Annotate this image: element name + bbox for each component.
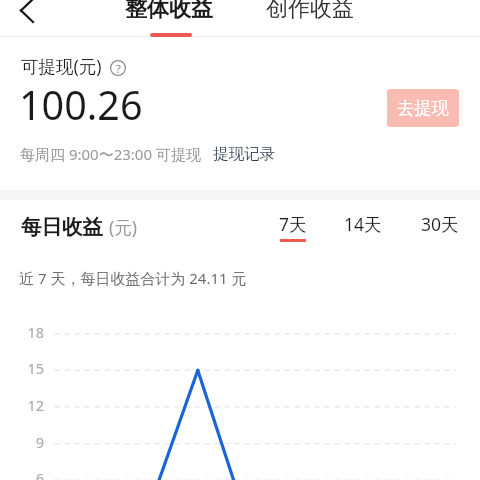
button[interactable]: 提现记录 (213, 144, 275, 164)
staticText: 整体收益 (125, 0, 213, 23)
button[interactable]: 7天 (263, 212, 323, 248)
staticText: 9 (22, 432, 44, 452)
button[interactable]: 整体收益 (121, 0, 217, 37)
staticText: 18 (22, 322, 44, 342)
staticText: 创作收益 (266, 0, 354, 23)
staticText: 100.26 (19, 78, 143, 132)
staticText: 可提现(元) (21, 54, 102, 78)
staticText: 30天 (421, 212, 459, 236)
staticText: (元) (109, 215, 137, 239)
button[interactable]: 30天 (410, 212, 470, 248)
button[interactable]: 14天 (333, 212, 393, 248)
staticText: 每日收益 (21, 214, 103, 240)
staticText: 7天 (279, 212, 307, 236)
button[interactable]: Help (109, 59, 127, 77)
button[interactable]: 创作收益 (262, 0, 358, 33)
button[interactable]: Back (8, 0, 46, 29)
staticText: ? (116, 61, 121, 76)
staticText: 14天 (344, 212, 382, 236)
staticText: 12 (22, 395, 44, 415)
staticText: 15 (22, 358, 44, 378)
staticText: 去提现 (397, 97, 449, 119)
button[interactable]: 去提现 (387, 89, 459, 127)
staticText: 每周四 9:00〜23:00 可提现 (20, 144, 201, 164)
staticText: 6 (22, 468, 44, 480)
staticText: 近 7 天，每日收益合计为 24.11 元 (19, 268, 247, 288)
